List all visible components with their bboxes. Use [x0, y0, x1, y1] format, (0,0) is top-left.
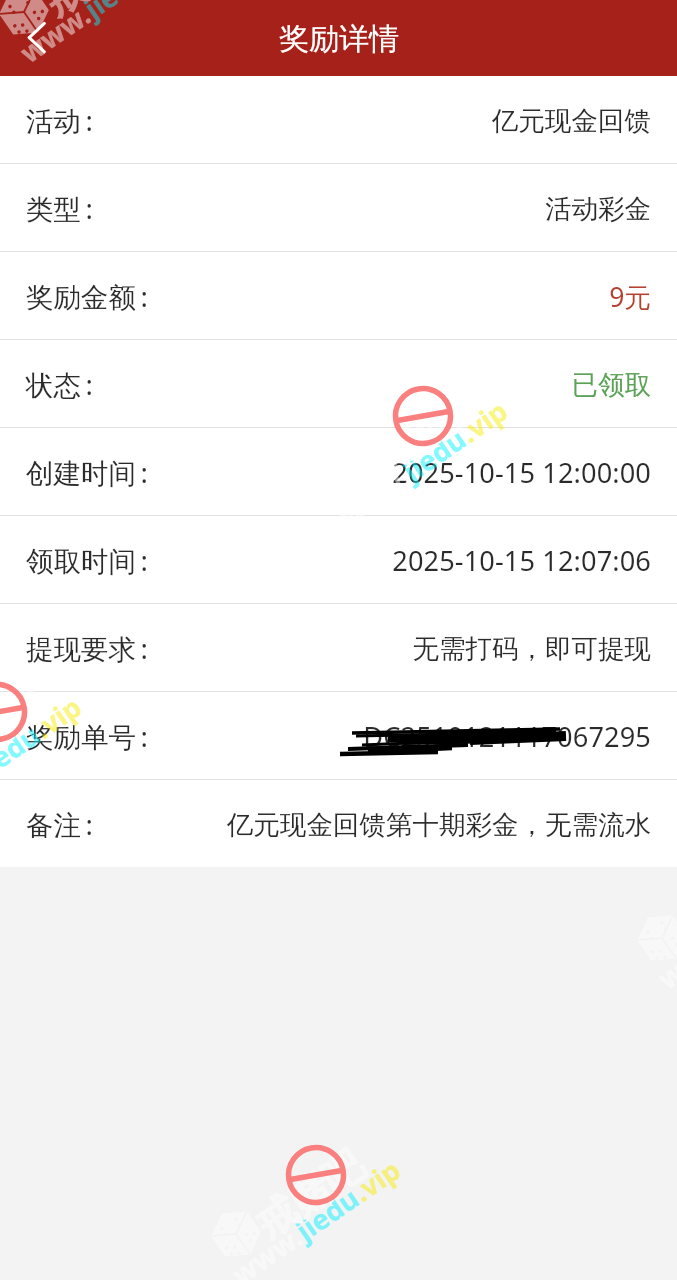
staticText: DC2510121117067295	[363, 718, 651, 755]
staticText: .vip	[346, 1151, 408, 1209]
staticText: 戒赌吧	[672, 843, 677, 953]
staticText: www.	[331, 459, 417, 534]
staticText: 无需打码，即可提现	[412, 632, 651, 665]
staticText: 2025-10-15 12:00:00	[392, 454, 651, 491]
staticText: 奖励单号 :	[26, 718, 148, 756]
staticText: www.	[12, 0, 98, 71]
staticText: 已领取	[571, 368, 651, 401]
staticText: 亿元现金回馈	[492, 104, 651, 137]
button[interactable]: 提现要求 :	[0, 604, 677, 691]
staticText: 活动 :	[26, 102, 93, 140]
button[interactable]: 状态 :	[0, 340, 677, 427]
staticText: jiedu	[0, 716, 48, 786]
staticText: 戒赌吧	[34, 0, 161, 27]
staticText: jiedu	[396, 420, 474, 490]
button[interactable]: 备注 :	[0, 780, 677, 867]
staticText: 创建时间 :	[26, 454, 148, 492]
staticText: 状态 :	[26, 366, 93, 404]
button[interactable]: 奖励单号 :	[0, 692, 677, 779]
staticText: 类型 :	[26, 190, 93, 228]
staticText: 提现要求 :	[26, 630, 148, 668]
staticText: 9元	[609, 279, 651, 315]
staticText: .vip	[27, 688, 89, 746]
staticText: 奖励详情	[279, 20, 399, 58]
staticText: 戒赌吧	[246, 1139, 373, 1249]
staticText: 活动彩金	[545, 192, 651, 225]
button[interactable]: 领取时间 :	[0, 516, 677, 603]
button[interactable]: 活动 :	[0, 76, 677, 163]
staticText: 2025-10-15 12:07:06	[392, 542, 651, 579]
staticText: jiedu	[77, 0, 155, 27]
staticText: jiedu	[289, 1179, 367, 1249]
staticText: 戒赌吧	[353, 380, 480, 490]
staticText: 戒赌吧	[0, 676, 54, 786]
button[interactable]: Back	[0, 0, 62, 76]
staticText: 备注 :	[26, 806, 93, 844]
button[interactable]: 奖励金额 :	[0, 252, 677, 339]
staticText: 亿元现金回馈第十期彩金，无需流水	[227, 808, 651, 841]
button[interactable]: 创建时间 :	[0, 428, 677, 515]
staticText: www.	[224, 1218, 310, 1280]
button[interactable]: 类型 :	[0, 164, 677, 251]
staticText: 领取时间 :	[26, 542, 148, 580]
staticText: 奖励金额 :	[26, 278, 148, 316]
staticText: .vip	[453, 392, 515, 450]
